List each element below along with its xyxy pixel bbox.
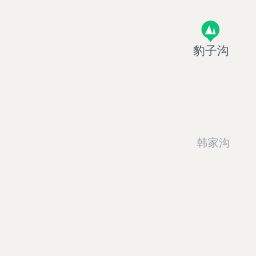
staticText: 韩家沟 [197, 136, 230, 150]
button[interactable]: 豹子沟 [193, 21, 229, 58]
button[interactable]: 韩家沟 [197, 136, 230, 150]
staticText: 豹子沟 [193, 43, 229, 58]
